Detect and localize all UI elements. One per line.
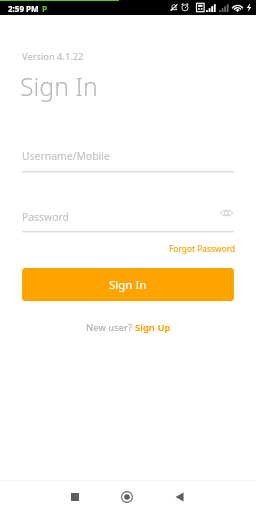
button[interactable]: Show password bbox=[214, 201, 238, 225]
button[interactable]: Password bbox=[22, 205, 234, 233]
staticText: Forgot Password bbox=[169, 243, 236, 254]
staticText: Sign In bbox=[20, 69, 98, 103]
button[interactable]: Back bbox=[159, 481, 199, 512]
staticText: Version 4.1.22 bbox=[22, 50, 84, 63]
button[interactable]: Sign In bbox=[22, 268, 234, 301]
staticText: Sign In bbox=[109, 277, 147, 293]
staticText: 2:59 PM bbox=[8, 3, 39, 14]
staticText: P bbox=[42, 3, 48, 15]
button[interactable]: Username/Mobile bbox=[22, 145, 234, 173]
staticText: Sign Up bbox=[135, 321, 171, 334]
staticText: New user? bbox=[86, 321, 135, 334]
button[interactable]: Recents bbox=[55, 481, 95, 512]
button[interactable]: Forgot Password bbox=[163, 237, 242, 260]
staticText: Password bbox=[22, 210, 69, 224]
staticText: Username/Mobile bbox=[22, 149, 110, 163]
button[interactable]: Sign Up bbox=[135, 321, 171, 334]
button[interactable]: Home bbox=[107, 481, 147, 512]
